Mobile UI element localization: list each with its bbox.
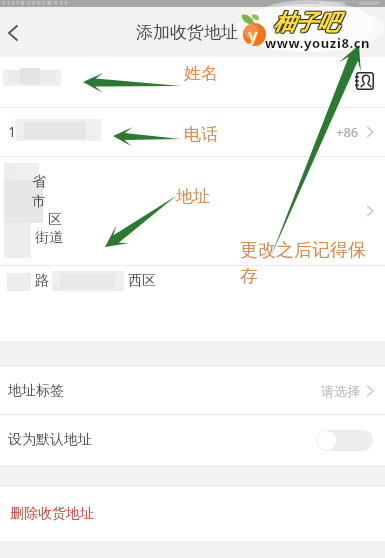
staticText: 柚子吧: [274, 8, 340, 36]
staticText: 西区: [128, 272, 156, 290]
staticText: 地址标签: [8, 382, 64, 400]
staticText: 设为默认地址: [8, 431, 92, 449]
button[interactable]: 路: [0, 266, 385, 341]
staticText: 柚子吧: [272, 9, 338, 37]
button[interactable]: 删除收货地址: [0, 487, 385, 541]
staticText: 柚子吧: [272, 8, 338, 36]
staticText: www.youzi8.cn: [265, 34, 371, 52]
staticText: 电话: [184, 124, 218, 145]
staticText: 柚子吧: [273, 8, 339, 36]
staticText: 删除收货地址: [10, 505, 94, 523]
button[interactable]: 1: [0, 108, 385, 156]
staticText: 柚子吧: [272, 10, 338, 38]
staticText: 市: [32, 193, 46, 211]
staticText: 地址: [176, 186, 210, 207]
staticText: 姓名: [184, 63, 218, 84]
staticText: 添加收货地址: [136, 22, 238, 43]
staticText: y: [248, 24, 258, 47]
staticText: 请选择: [321, 383, 360, 399]
button[interactable]: Select from contacts: [355, 72, 374, 90]
button[interactable]: Back: [0, 7, 34, 57]
button[interactable]: 省: [0, 157, 385, 265]
staticText: 街道: [35, 229, 63, 247]
staticText: 更改之后记得保 存: [240, 239, 366, 287]
button[interactable]: Select from contacts: [0, 57, 385, 107]
staticText: 省: [32, 173, 46, 191]
staticText: 路: [35, 272, 49, 290]
staticText: 区: [48, 211, 62, 229]
staticText: +86: [336, 123, 359, 141]
button[interactable]: 地址标签: [0, 367, 385, 414]
button[interactable]: 设为默认地址: [0, 415, 385, 465]
staticText: 柚子吧: [274, 10, 340, 38]
button[interactable]: Set as default address: [316, 430, 373, 451]
staticText: 柚子吧: [273, 9, 339, 37]
staticText: 柚子吧: [273, 10, 339, 38]
staticText: 1: [8, 122, 17, 141]
staticText: 柚子吧: [274, 9, 340, 37]
